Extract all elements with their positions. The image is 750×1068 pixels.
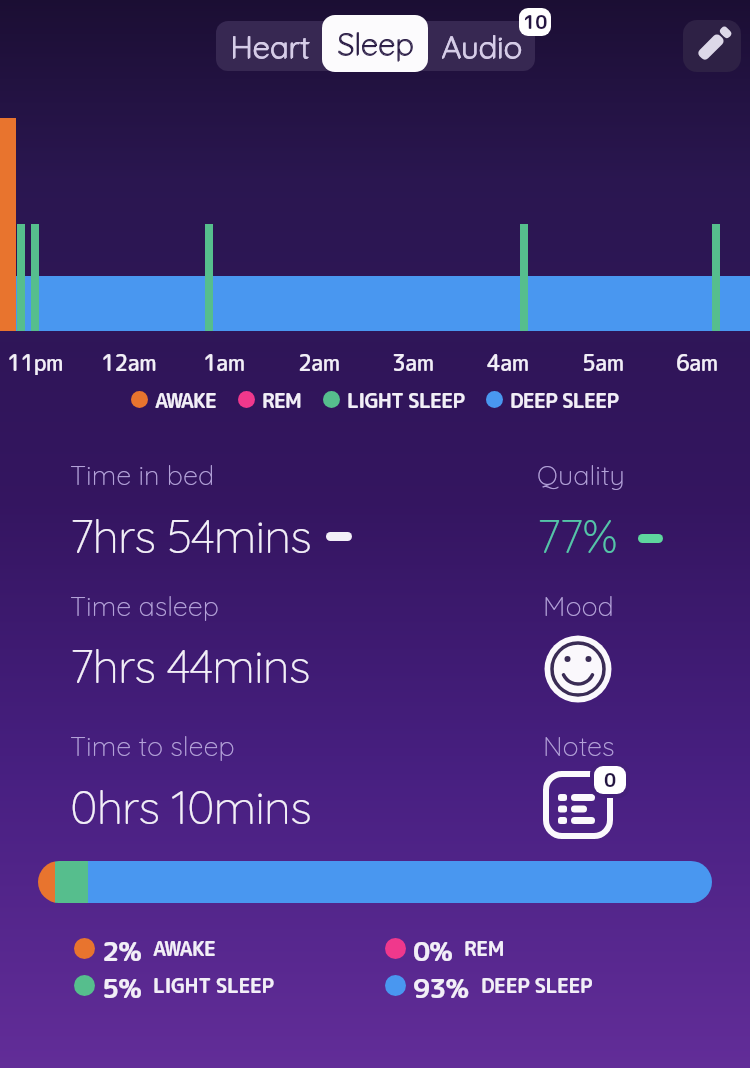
staticText: DEEP SLEEP (481, 971, 593, 999)
staticText: 10 (523, 9, 548, 36)
staticText: Mood (543, 589, 614, 623)
staticText: Quality (537, 458, 625, 492)
staticText: Sleep (338, 24, 415, 63)
staticText: Heart (230, 28, 310, 67)
staticText: Audio (441, 28, 522, 67)
staticText: Audio (441, 27, 522, 66)
staticText: Heart (230, 27, 310, 66)
button[interactable] (683, 20, 741, 72)
staticText: 5am (582, 347, 624, 375)
staticText: 3am (392, 347, 434, 375)
staticText: 2am (298, 347, 340, 375)
staticText: LIGHT SLEEP (153, 971, 274, 999)
staticText: Time to sleep (70, 729, 235, 763)
staticText: 0% (413, 932, 452, 964)
button[interactable] (540, 631, 616, 707)
staticText: 7hrs 44mins (70, 636, 310, 695)
staticText: 11pm (7, 347, 63, 375)
staticText: 4am (487, 347, 529, 375)
staticText: 7hrs 54mins (70, 506, 311, 565)
staticText: REM (464, 934, 504, 962)
staticText: 0 (604, 767, 617, 794)
staticText: 6am (676, 347, 718, 375)
staticText: 77% (537, 506, 617, 565)
staticText: Sleep (337, 25, 414, 64)
staticText: AWAKE (153, 934, 216, 962)
staticText: 0hrs 10mins (70, 777, 311, 836)
button[interactable]: Heart (216, 21, 323, 71)
staticText: 12am (101, 347, 157, 375)
staticText: Time asleep (70, 589, 219, 623)
staticText: Notes (543, 729, 615, 763)
staticText: DEEP SLEEP (510, 386, 619, 412)
button[interactable]: 0 (540, 760, 632, 844)
staticText: Heart (231, 27, 311, 66)
staticText: Audio (442, 27, 523, 66)
staticText: AWAKE (155, 386, 217, 412)
staticText: 5% (102, 969, 141, 1001)
staticText: 2% (102, 932, 141, 964)
staticText: LIGHT SLEEP (347, 386, 465, 412)
button[interactable]: Audio (428, 21, 535, 71)
staticText: REM (262, 386, 302, 412)
staticText: 1am (203, 347, 245, 375)
button[interactable]: Sleep (322, 15, 428, 72)
staticText: Sleep (337, 24, 414, 63)
staticText: Time in bed (70, 458, 215, 492)
staticText: 93% (413, 969, 469, 1001)
